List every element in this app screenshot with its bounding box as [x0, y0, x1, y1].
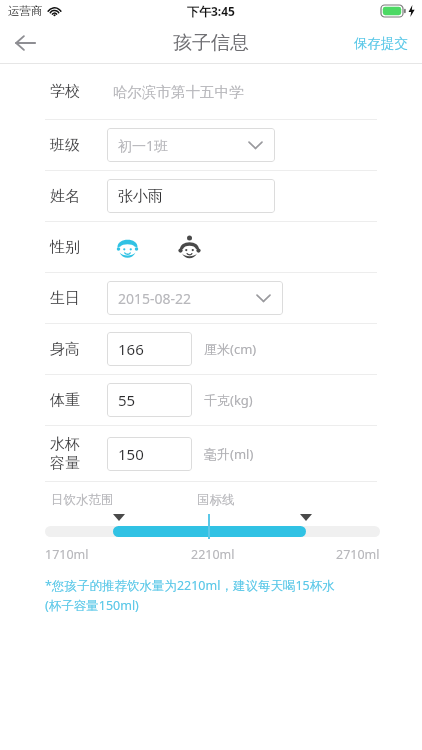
staticText: *您孩子的推荐饮水量为2210ml，建议每天喝15杯水 — [45, 577, 335, 594]
staticText: 孩子信息 — [173, 31, 249, 55]
button[interactable]: 166 — [107, 332, 192, 366]
staticText: 运营商 — [8, 4, 43, 18]
staticText: 姓名 — [50, 187, 80, 206]
button[interactable]: 班级 — [0, 120, 422, 170]
staticText: 保存提交 — [354, 35, 408, 52]
staticText: 厘米(cm) — [204, 340, 257, 358]
staticText: 55 — [118, 390, 136, 410]
staticText: 体重 — [50, 391, 80, 410]
staticText: 150 — [118, 444, 144, 464]
staticText: 166 — [118, 339, 144, 359]
staticText: 学校 — [50, 82, 80, 101]
staticText: 毫升(ml) — [204, 445, 254, 463]
button[interactable]: 身高 — [0, 324, 422, 374]
staticText: 日饮水范围 — [51, 492, 114, 508]
staticText: 下午3:45 — [187, 3, 235, 19]
staticText: 2015-08-22 — [118, 289, 192, 308]
staticText: 班级 — [50, 136, 80, 155]
staticText: 2710ml — [336, 546, 380, 563]
staticText: 张小雨 — [118, 187, 163, 206]
button[interactable]: 张小雨 — [107, 179, 275, 213]
button[interactable]: 55 — [107, 383, 192, 417]
staticText: 初一1班 — [118, 136, 169, 155]
staticText: 性别 — [50, 238, 80, 257]
button[interactable]: 保存提交 — [340, 22, 422, 64]
staticText: 容量 — [50, 454, 80, 473]
staticText: (杯子容量150ml) — [45, 597, 139, 614]
button[interactable]: 150 — [107, 437, 192, 471]
button[interactable]: 男孩 — [107, 227, 147, 267]
staticText: 哈尔滨市第十五中学 — [113, 83, 244, 101]
button[interactable]: 姓名 — [0, 171, 422, 221]
button[interactable]: 生日 — [0, 273, 422, 323]
staticText: 生日 — [50, 289, 80, 308]
button[interactable]: 女孩 — [169, 227, 209, 267]
button[interactable]: 返回 — [0, 22, 50, 64]
button[interactable]: 体重 — [0, 375, 422, 425]
button[interactable]: 学校 — [0, 64, 422, 119]
button[interactable]: 2015-08-22 — [107, 281, 283, 315]
staticText: 身高 — [50, 340, 80, 359]
staticText: 2210ml — [191, 546, 235, 563]
staticText: 国标线 — [197, 492, 235, 508]
button[interactable]: 水杯 — [0, 426, 422, 481]
button[interactable] — [45, 526, 380, 537]
staticText: 1710ml — [45, 546, 89, 563]
button[interactable]: 初一1班 — [107, 128, 275, 162]
staticText: 千克(kg) — [204, 391, 253, 409]
button[interactable]: 性别 — [0, 222, 422, 272]
staticText: 水杯 — [50, 435, 80, 454]
